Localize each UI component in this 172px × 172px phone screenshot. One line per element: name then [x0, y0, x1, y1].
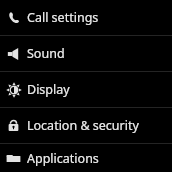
button[interactable]: Location & security — [0, 108, 172, 143]
button[interactable]: Call settings — [0, 0, 172, 35]
staticText: Call settings — [27, 9, 99, 26]
staticText: Applications — [27, 150, 99, 167]
button[interactable]: Applications — [0, 144, 172, 172]
button[interactable]: Display — [0, 72, 172, 107]
staticText: Location & security — [27, 117, 139, 134]
button[interactable]: Sound — [0, 36, 172, 71]
staticText: Sound — [27, 45, 65, 62]
staticText: Display — [27, 81, 70, 98]
